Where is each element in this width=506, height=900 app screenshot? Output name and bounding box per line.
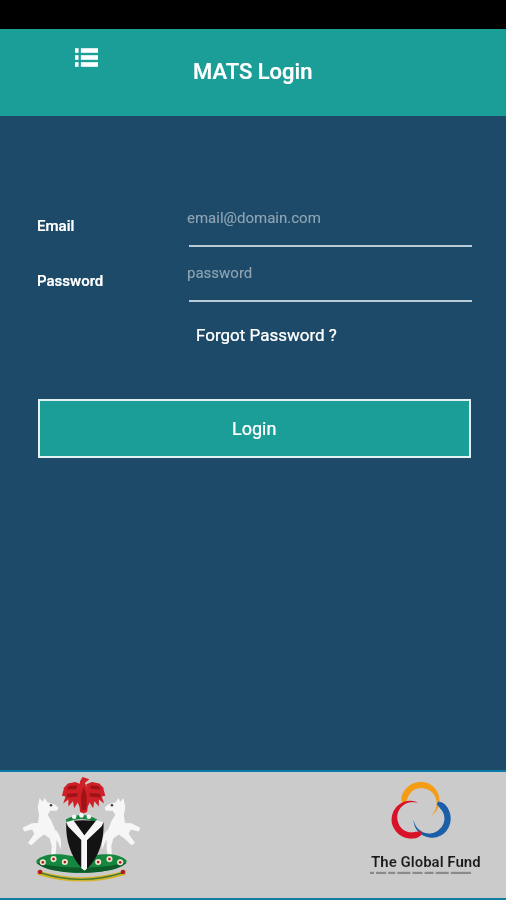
button[interactable]: Login [38,399,471,458]
staticText: Forgot Password ? [196,325,337,345]
staticText: Password [37,272,104,290]
staticText: Email [37,217,75,235]
staticText: password [187,264,253,282]
staticText: Login [232,418,277,439]
staticText: email@domain.com [187,209,321,227]
button[interactable]: Forgot Password ? [189,320,344,350]
button[interactable]: Open navigation menu [62,33,110,81]
staticText: MATS Login [193,59,313,85]
button[interactable]: password [187,258,472,302]
button[interactable]: email@domain.com [187,203,472,247]
staticText: The Global Fund [371,853,481,871]
